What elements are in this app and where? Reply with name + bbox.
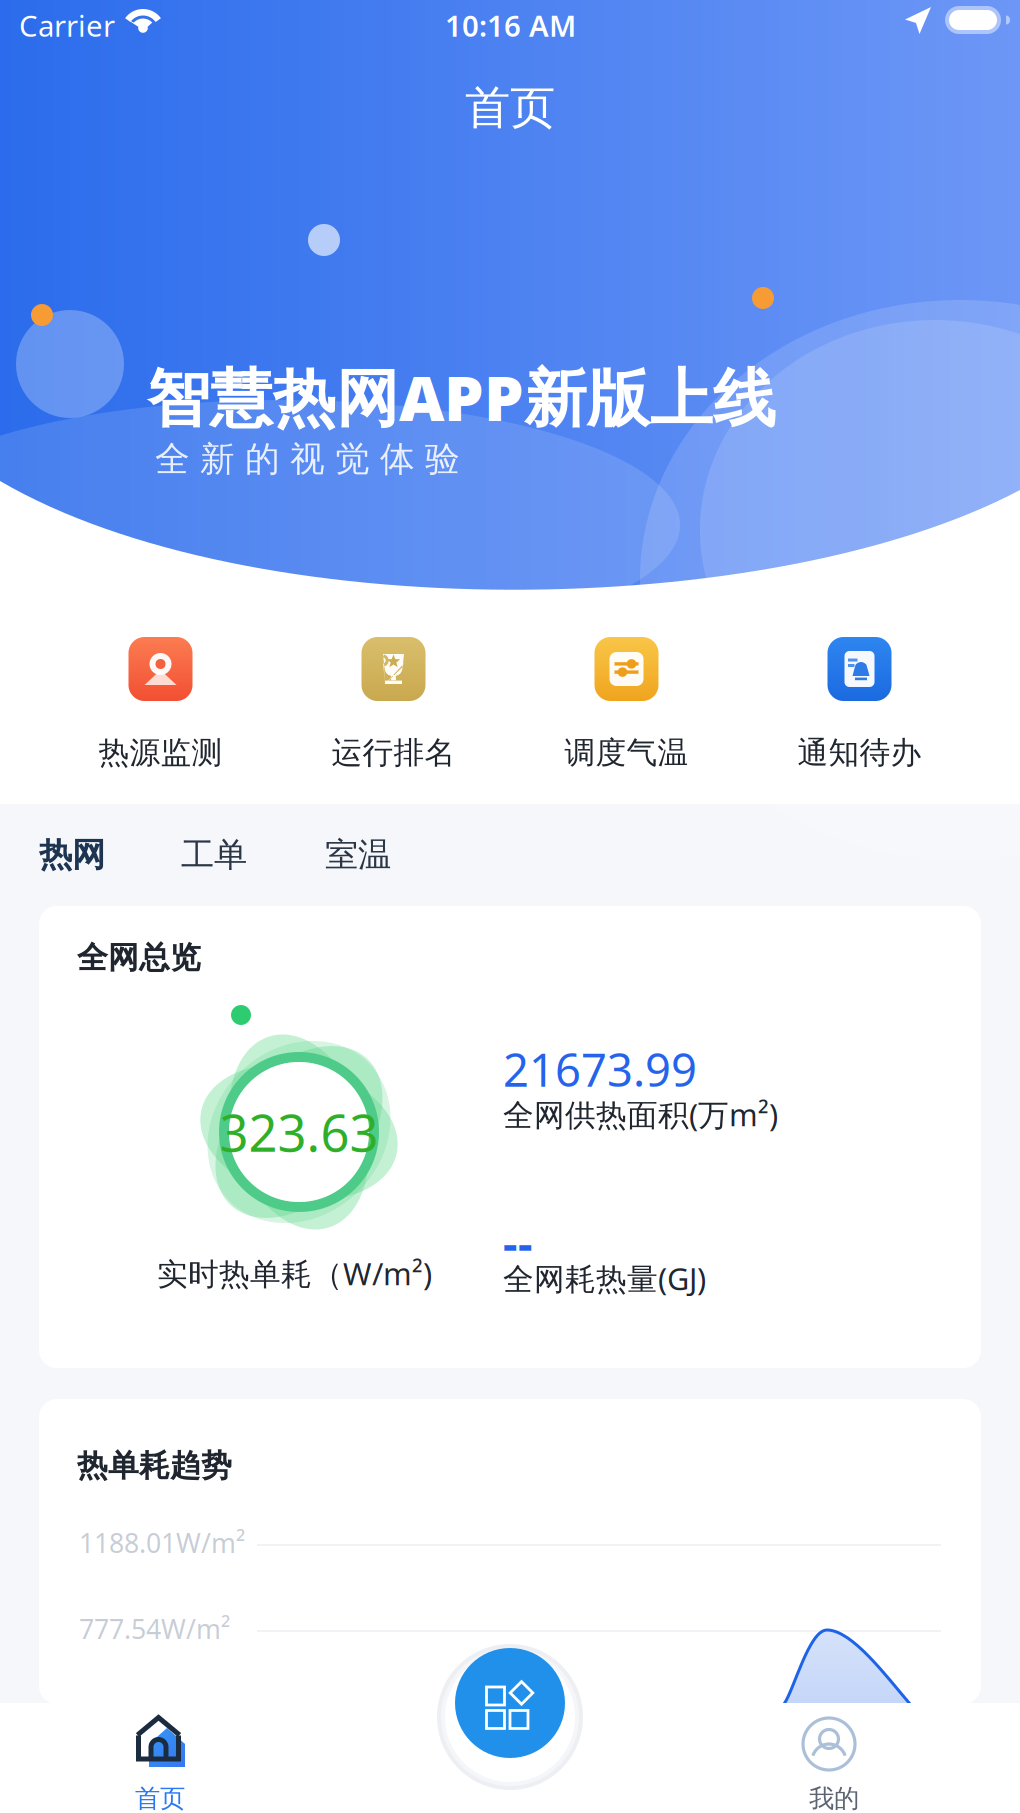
button[interactable]: 我的 [665, 1703, 1005, 1813]
staticText: 实时热单耗（W/m²) [157, 1253, 432, 1294]
staticText: 热单耗趋势 [77, 1447, 232, 1485]
staticText: 我的 [809, 1783, 859, 1813]
staticText: 777.54W/m² [79, 1611, 230, 1646]
staticText: 323.63 [219, 1098, 378, 1166]
staticText: 热网 [39, 834, 105, 875]
staticText: 通知待办 [797, 734, 921, 772]
button[interactable]: 热网 [39, 820, 159, 890]
staticText: 21673.99 [503, 1039, 697, 1099]
staticText: 运行排名 [331, 734, 455, 772]
button[interactable]: 通知待办 [743, 637, 976, 802]
button[interactable]: 应用 [455, 1648, 565, 1758]
staticText: 1188.01W/m² [79, 1525, 245, 1560]
staticText: 智慧热网APP新版上线 [147, 355, 776, 438]
button[interactable]: 室温 [325, 820, 445, 890]
button[interactable]: 运行排名 [277, 637, 510, 802]
button[interactable]: 工单 [181, 820, 301, 890]
button[interactable]: 热源监测 [44, 637, 277, 802]
staticText: 调度气温 [564, 734, 688, 772]
staticText: 10:16 AM [445, 6, 576, 45]
staticText: -- [503, 1212, 533, 1272]
staticText: 工单 [181, 834, 247, 875]
staticText: Carrier [19, 6, 115, 45]
staticText: 热源监测 [98, 734, 222, 772]
staticText: 室温 [325, 834, 391, 875]
staticText: 首页 [465, 80, 555, 136]
button[interactable]: 首页 [0, 1703, 340, 1813]
staticText: 全网耗热量(GJ) [503, 1258, 706, 1299]
button[interactable]: 调度气温 [510, 637, 743, 802]
staticText: 全网供热面积(万m²) [503, 1094, 778, 1135]
staticText: 全网总览 [77, 939, 201, 977]
staticText: 首页 [135, 1783, 185, 1813]
staticText: 全 新 的 视 觉 体 验 [155, 438, 460, 481]
